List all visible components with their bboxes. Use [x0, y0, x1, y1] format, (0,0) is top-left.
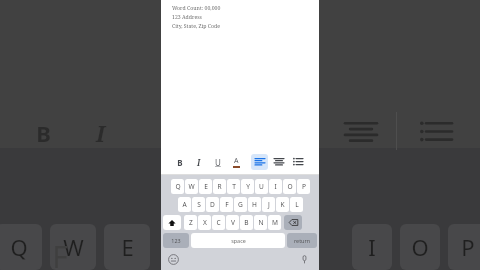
- button[interactable]: Align left: [251, 154, 268, 170]
- staticText: U: [259, 182, 264, 191]
- staticText: return: [294, 237, 310, 244]
- staticText: E: [121, 232, 134, 262]
- button[interactable]: space: [191, 233, 285, 248]
- staticText: E: [204, 182, 208, 191]
- button[interactable]: U: [255, 179, 268, 194]
- button[interactable]: F: [220, 197, 233, 212]
- staticText: G: [238, 200, 243, 209]
- staticText: 123 Address: [172, 13, 202, 20]
- button[interactable]: Y: [241, 179, 254, 194]
- staticText: W: [63, 232, 84, 262]
- staticText: P: [302, 182, 306, 191]
- staticText: V: [231, 218, 235, 227]
- button[interactable]: Q: [171, 179, 184, 194]
- button[interactable]: G: [234, 197, 247, 212]
- staticText: D: [210, 200, 215, 209]
- button[interactable]: B: [171, 154, 188, 170]
- staticText: O: [287, 182, 293, 191]
- button[interactable]: C: [212, 215, 225, 230]
- button[interactable]: W: [185, 179, 198, 194]
- staticText: Y: [246, 182, 250, 191]
- staticText: S: [197, 200, 201, 209]
- button[interactable]: P: [297, 179, 310, 194]
- staticText: I: [197, 157, 201, 168]
- staticText: O: [411, 232, 429, 262]
- staticText: Q: [10, 232, 28, 262]
- staticText: space: [231, 237, 246, 244]
- staticText: J: [268, 200, 270, 209]
- staticText: F: [52, 236, 68, 270]
- staticText: A: [234, 156, 239, 166]
- button[interactable]: T: [227, 179, 240, 194]
- staticText: L: [295, 200, 299, 209]
- staticText: I: [274, 182, 277, 191]
- button[interactable]: Shift: [163, 215, 181, 230]
- button[interactable]: D: [206, 197, 219, 212]
- button[interactable]: Backspace: [284, 215, 302, 230]
- staticText: N: [258, 218, 264, 227]
- staticText: Z: [189, 218, 193, 227]
- staticText: I: [96, 118, 105, 148]
- button[interactable]: Dictate: [299, 254, 310, 265]
- staticText: C: [216, 218, 221, 227]
- button[interactable]: Z: [184, 215, 197, 230]
- button[interactable]: Italic: [190, 154, 207, 170]
- button[interactable]: Text color: [228, 154, 245, 170]
- button[interactable]: X: [198, 215, 211, 230]
- button[interactable]: return: [287, 233, 317, 248]
- button[interactable]: Emoji: [168, 254, 179, 265]
- staticText: B: [36, 118, 51, 148]
- button[interactable]: O: [283, 179, 296, 194]
- button[interactable]: Align center: [270, 154, 287, 170]
- staticText: 123: [171, 237, 181, 244]
- staticText: A: [182, 200, 187, 209]
- staticText: Word Count: 00,000: [172, 4, 221, 11]
- staticText: W: [188, 182, 195, 191]
- staticText: P: [461, 232, 475, 262]
- button[interactable]: H: [248, 197, 261, 212]
- staticText: I: [368, 232, 376, 262]
- button[interactable]: L: [290, 197, 303, 212]
- button[interactable]: N: [254, 215, 267, 230]
- staticText: Q: [175, 182, 181, 191]
- staticText: B: [177, 157, 183, 168]
- staticText: K: [280, 200, 285, 209]
- staticText: H: [252, 200, 257, 209]
- staticText: B: [244, 218, 249, 227]
- button[interactable]: Bulleted list: [289, 154, 306, 170]
- button[interactable]: R: [213, 179, 226, 194]
- staticText: F: [225, 200, 229, 209]
- other: Align left: [255, 158, 265, 166]
- button[interactable]: 123: [163, 233, 189, 248]
- staticText: T: [232, 182, 236, 191]
- button[interactable]: K: [276, 197, 289, 212]
- button[interactable]: V: [226, 215, 239, 230]
- button[interactable]: E: [199, 179, 212, 194]
- staticText: M: [272, 218, 278, 227]
- button[interactable]: I: [269, 179, 282, 194]
- staticText: U: [215, 157, 221, 168]
- button[interactable]: J: [262, 197, 275, 212]
- button[interactable]: M: [268, 215, 281, 230]
- button[interactable]: A: [178, 197, 191, 212]
- button[interactable]: Underline: [209, 154, 226, 170]
- staticText: R: [217, 182, 222, 191]
- button[interactable]: S: [192, 197, 205, 212]
- staticText: City, State, Zip Code: [172, 22, 220, 29]
- staticText: X: [203, 218, 207, 227]
- button[interactable]: B: [240, 215, 253, 230]
